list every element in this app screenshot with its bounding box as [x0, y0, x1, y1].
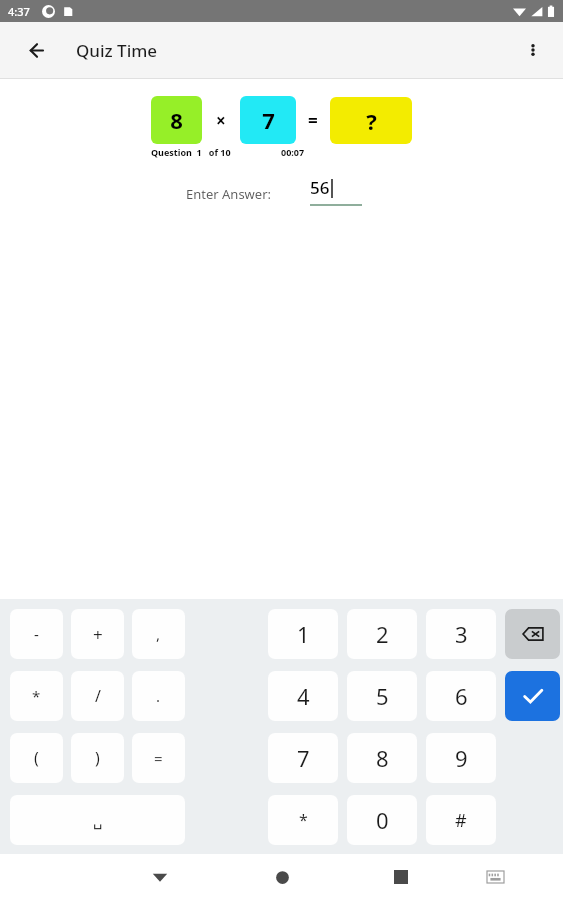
staticText: ,: [156, 624, 161, 644]
button[interactable]: Home: [260, 855, 304, 899]
staticText: =: [154, 748, 163, 768]
staticText: ␣: [93, 812, 103, 829]
staticText: (: [34, 747, 39, 769]
button[interactable]: Space: [10, 795, 185, 845]
button[interactable]: ,: [132, 609, 185, 659]
staticText: 00:07: [281, 146, 305, 158]
button[interactable]: 1: [268, 609, 338, 659]
button[interactable]: 8: [347, 733, 417, 783]
staticText: 56: [310, 176, 330, 199]
staticText: ×: [216, 109, 226, 132]
button[interactable]: *: [10, 671, 63, 721]
staticText: -: [34, 624, 39, 644]
staticText: +: [93, 623, 103, 646]
button[interactable]: 6: [426, 671, 496, 721]
button[interactable]: ?: [330, 97, 412, 144]
button[interactable]: *: [268, 795, 338, 845]
button[interactable]: More options: [511, 28, 555, 72]
staticText: Enter Answer:: [186, 185, 272, 203]
button[interactable]: Backspace: [505, 609, 560, 659]
button[interactable]: 7: [268, 733, 338, 783]
staticText: .: [156, 686, 161, 706]
staticText: Question 1 of 10: [151, 146, 231, 158]
staticText: *: [299, 809, 308, 831]
button[interactable]: 5: [347, 671, 417, 721]
staticText: 6: [455, 681, 468, 711]
button[interactable]: 4: [268, 671, 338, 721]
staticText: 3: [455, 619, 468, 649]
staticText: 7: [262, 105, 275, 135]
button[interactable]: Back: [138, 855, 182, 899]
button[interactable]: ): [71, 733, 124, 783]
button[interactable]: .: [132, 671, 185, 721]
button[interactable]: 8: [151, 96, 202, 144]
staticText: 2: [376, 619, 389, 649]
staticText: 9: [455, 743, 468, 773]
button[interactable]: /: [71, 671, 124, 721]
button[interactable]: Back: [12, 28, 56, 72]
button[interactable]: -: [10, 609, 63, 659]
staticText: 7: [297, 743, 310, 773]
button[interactable]: (: [10, 733, 63, 783]
staticText: 1: [297, 619, 310, 649]
staticText: #: [455, 808, 467, 833]
button[interactable]: =: [132, 733, 185, 783]
staticText: ?: [366, 106, 377, 136]
staticText: Quiz Time: [76, 39, 158, 62]
staticText: 4: [297, 681, 310, 711]
button[interactable]: Enter: [505, 671, 560, 721]
staticText: /: [95, 685, 101, 707]
staticText: =: [308, 109, 318, 132]
button[interactable]: 7: [240, 96, 296, 144]
button[interactable]: 3: [426, 609, 496, 659]
button[interactable]: Recents: [379, 855, 423, 899]
staticText: *: [32, 686, 41, 706]
staticText: 8: [376, 743, 389, 773]
button[interactable]: 9: [426, 733, 496, 783]
staticText: 5: [376, 681, 389, 711]
staticText: 4:37: [8, 4, 30, 19]
staticText: 0: [376, 805, 389, 835]
button[interactable]: 0: [347, 795, 417, 845]
button[interactable]: #: [426, 795, 496, 845]
button[interactable]: 2: [347, 609, 417, 659]
staticText: ): [95, 747, 100, 769]
button[interactable]: +: [71, 609, 124, 659]
staticText: 8: [170, 105, 183, 135]
button[interactable]: Switch keyboard: [475, 857, 515, 897]
